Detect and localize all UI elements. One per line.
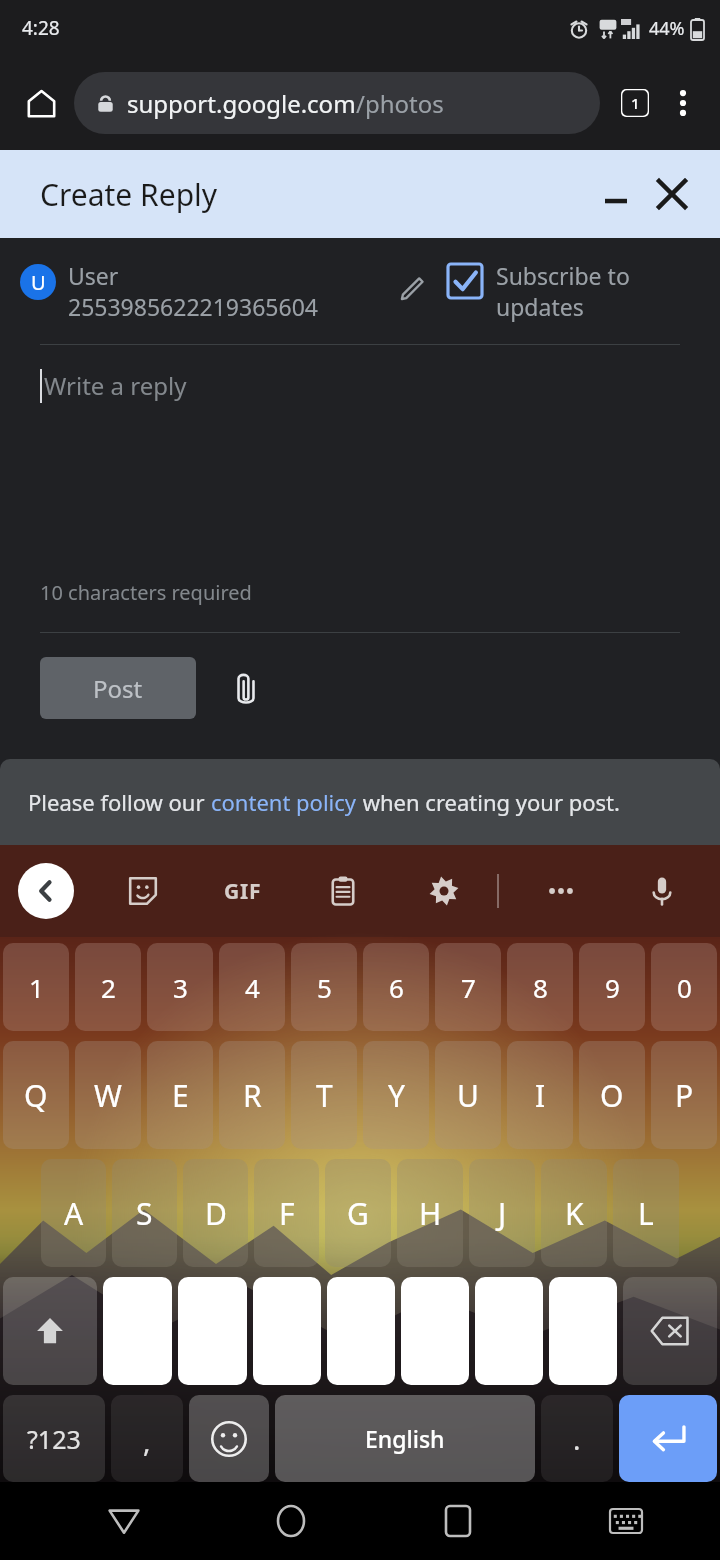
button[interactable]: L xyxy=(613,1159,679,1267)
staticText: 3 xyxy=(173,970,188,1005)
button[interactable]: U xyxy=(20,260,430,322)
button[interactable]: , xyxy=(111,1395,183,1482)
button[interactable]: 3 xyxy=(147,943,213,1031)
button[interactable]: H xyxy=(397,1159,463,1267)
staticText: O xyxy=(600,1075,624,1116)
staticText: 44% xyxy=(649,16,685,41)
button[interactable]: Back xyxy=(40,1482,207,1560)
button[interactable]: N xyxy=(475,1277,543,1385)
button[interactable]: M xyxy=(549,1277,617,1385)
button[interactable]: C xyxy=(253,1277,321,1385)
button[interactable]: GIF xyxy=(215,863,271,919)
button[interactable]: Edit name xyxy=(394,270,430,306)
button[interactable]: . xyxy=(541,1395,613,1482)
button[interactable]: support.google.com xyxy=(74,72,600,134)
button[interactable]: Settings xyxy=(415,862,473,920)
button[interactable]: Minimize xyxy=(590,168,642,220)
button[interactable]: I xyxy=(507,1041,573,1149)
button[interactable]: O xyxy=(579,1041,645,1149)
button[interactable]: Q xyxy=(3,1041,69,1149)
button[interactable]: G xyxy=(325,1159,391,1267)
staticText: I xyxy=(535,1075,546,1116)
button[interactable]: Home xyxy=(14,76,68,130)
button[interactable]: Recents xyxy=(374,1482,542,1560)
staticText: Q xyxy=(24,1075,48,1116)
staticText: H xyxy=(419,1193,442,1234)
button[interactable]: 2 xyxy=(75,943,141,1031)
button[interactable]: X xyxy=(178,1277,247,1385)
button[interactable]: 9 xyxy=(579,943,645,1031)
staticText: W xyxy=(94,1075,122,1116)
staticText: support.google.com xyxy=(127,87,356,120)
staticText: 0 xyxy=(677,970,692,1005)
button[interactable]: R xyxy=(219,1041,285,1149)
button[interactable]: English xyxy=(275,1395,535,1482)
staticText: T xyxy=(316,1075,333,1116)
staticText: L xyxy=(638,1193,654,1234)
button[interactable]: S xyxy=(112,1159,177,1267)
button[interactable]: Shift xyxy=(3,1277,97,1385)
button[interactable]: 7 xyxy=(435,943,501,1031)
button[interactable]: More xyxy=(532,862,590,920)
staticText: User xyxy=(68,260,119,291)
button[interactable]: Enter xyxy=(619,1395,717,1482)
button[interactable]: T xyxy=(291,1041,357,1149)
staticText: G xyxy=(347,1193,369,1234)
button[interactable]: Emoji xyxy=(189,1395,269,1482)
button[interactable]: Attach file xyxy=(220,662,272,714)
staticText: content policy xyxy=(211,787,357,817)
staticText: P xyxy=(675,1075,694,1116)
button[interactable]: Voice input xyxy=(633,862,691,920)
button[interactable]: K xyxy=(541,1159,607,1267)
button[interactable]: V xyxy=(327,1277,395,1385)
button[interactable]: 0 xyxy=(651,943,717,1031)
staticText: 1 xyxy=(631,93,640,113)
button[interactable]: Close xyxy=(646,168,698,220)
button[interactable]: Y xyxy=(363,1041,429,1149)
button[interactable]: Stickers xyxy=(114,862,172,920)
button[interactable]: F xyxy=(254,1159,319,1267)
staticText: R xyxy=(243,1075,262,1116)
button[interactable]: Tabs xyxy=(610,78,660,128)
button[interactable]: 5 xyxy=(291,943,357,1031)
button[interactable]: E xyxy=(147,1041,213,1149)
staticText: 2553985622219365604 xyxy=(68,291,318,322)
button[interactable]: W xyxy=(75,1041,141,1149)
button[interactable]: P xyxy=(651,1041,717,1149)
staticText: ?123 xyxy=(27,1422,81,1456)
button[interactable]: Back xyxy=(18,863,74,919)
button[interactable]: A xyxy=(41,1159,106,1267)
button[interactable]: Keyboard xyxy=(542,1482,710,1560)
button[interactable]: J xyxy=(469,1159,535,1267)
button[interactable]: Home xyxy=(207,1482,374,1560)
button[interactable]: Clipboard xyxy=(314,862,372,920)
button[interactable]: Post xyxy=(40,657,196,719)
button[interactable]: 1 xyxy=(3,943,69,1031)
staticText: 4:28 xyxy=(22,15,60,41)
staticText: , xyxy=(143,1422,151,1460)
staticText: 9 xyxy=(605,970,620,1005)
staticText: /photos xyxy=(356,87,444,120)
staticText: Write a reply xyxy=(44,369,187,402)
button[interactable]: 6 xyxy=(363,943,429,1031)
staticText: . xyxy=(573,1420,581,1458)
button[interactable]: 8 xyxy=(507,943,573,1031)
button[interactable]: ?123 xyxy=(3,1395,105,1482)
staticText: 1 xyxy=(29,970,44,1005)
button[interactable]: U xyxy=(435,1041,501,1149)
staticText: 10 characters required xyxy=(40,579,252,606)
button[interactable]: Subscribe to xyxy=(448,260,700,322)
button[interactable]: More options xyxy=(660,80,706,126)
staticText: K xyxy=(565,1193,584,1234)
staticText: S xyxy=(136,1193,153,1234)
button[interactable]: Please follow our xyxy=(0,759,720,845)
button[interactable]: Backspace xyxy=(623,1277,717,1385)
button[interactable]: 4 xyxy=(219,943,285,1031)
button[interactable]: Z xyxy=(103,1277,172,1385)
button[interactable]: B xyxy=(401,1277,469,1385)
button[interactable]: D xyxy=(183,1159,248,1267)
